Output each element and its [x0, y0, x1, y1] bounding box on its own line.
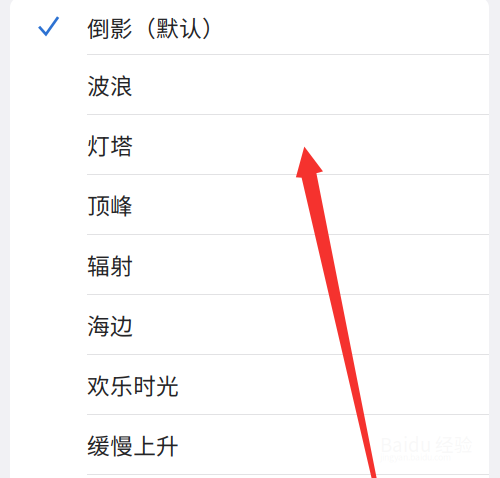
- staticText: 海边: [87, 308, 133, 341]
- button[interactable]: 海边: [10, 295, 489, 355]
- staticText: 顶峰: [87, 188, 133, 221]
- staticText: 灯塔: [87, 128, 133, 161]
- button[interactable]: 灯塔: [10, 115, 489, 175]
- button[interactable]: 辐射: [10, 235, 489, 295]
- button[interactable]: 波浪: [10, 55, 489, 115]
- staticText: 倒影（默认）: [87, 11, 225, 43]
- button[interactable]: 欢乐时光: [10, 355, 489, 415]
- staticText: 波浪: [87, 68, 133, 101]
- button[interactable]: 缓慢上升: [10, 415, 489, 475]
- staticText: 缓慢上升: [87, 428, 179, 461]
- button[interactable]: 顶峰: [10, 175, 489, 235]
- button[interactable]: 倒影（默认）: [10, 0, 489, 55]
- staticText: 欢乐时光: [87, 368, 179, 401]
- staticText: 辐射: [87, 248, 133, 281]
